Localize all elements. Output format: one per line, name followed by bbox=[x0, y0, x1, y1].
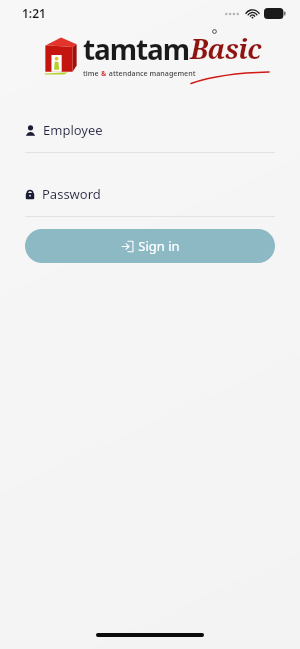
staticText: Employee bbox=[43, 121, 103, 139]
other: Password bbox=[25, 188, 35, 200]
staticText: time bbox=[83, 69, 101, 79]
button[interactable]: Sign in bbox=[25, 229, 275, 263]
staticText: & bbox=[101, 69, 107, 79]
staticText: Password bbox=[42, 185, 101, 203]
button[interactable]: Password bbox=[0, 183, 300, 217]
button[interactable]: Employee bbox=[0, 119, 300, 153]
staticText: tamtam bbox=[83, 30, 189, 68]
staticText: attendance management bbox=[107, 69, 196, 79]
other: Employee bbox=[25, 125, 36, 136]
staticText: Basic bbox=[190, 30, 261, 67]
staticText: 1:21 bbox=[22, 5, 46, 21]
staticText: Sign in bbox=[138, 237, 180, 255]
